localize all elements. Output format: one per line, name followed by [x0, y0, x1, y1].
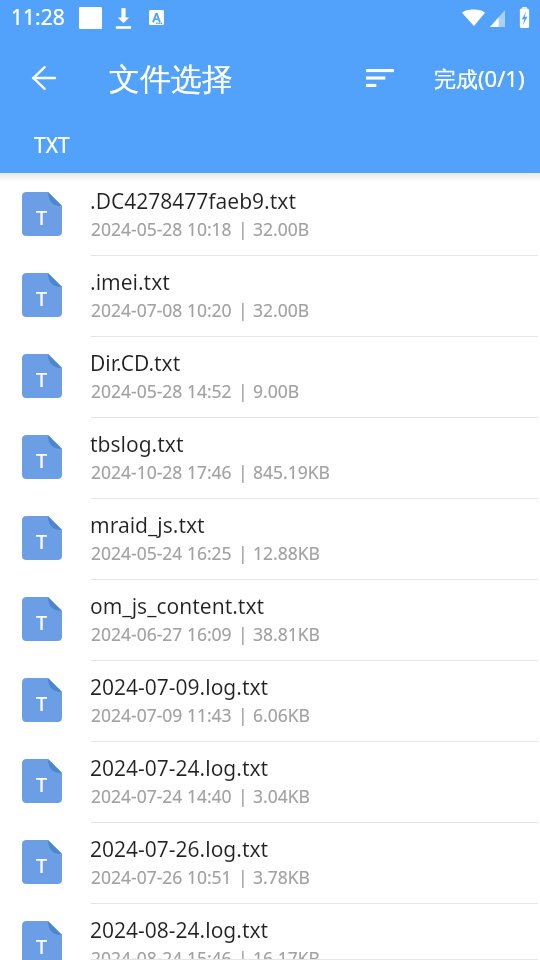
staticText: T: [36, 366, 48, 393]
staticText: 2024-10-28 17:46: [91, 460, 232, 484]
staticText: 2024-07-24.log.txt: [90, 754, 269, 783]
staticText: 3.78KB: [253, 865, 310, 889]
button[interactable]: TXT: [20, 122, 84, 169]
staticText: 38.81KB: [253, 622, 320, 646]
staticText: |: [238, 865, 248, 889]
staticText: 2024-07-26 10:51: [91, 865, 232, 889]
staticText: |: [238, 217, 248, 241]
staticText: T: [36, 609, 48, 636]
button[interactable]: T: [0, 580, 540, 661]
staticText: T: [36, 285, 48, 312]
staticText: 2024-08-24.log.txt: [90, 916, 269, 945]
staticText: |: [238, 460, 248, 484]
staticText: 32.00B: [253, 298, 310, 322]
staticText: |: [238, 622, 248, 646]
staticText: 2024-05-28 10:18: [91, 217, 232, 241]
staticText: 2024-07-09 11:43: [91, 703, 232, 727]
staticText: 2024-06-27 16:09: [91, 622, 232, 646]
staticText: T: [36, 852, 48, 879]
button[interactable]: T: [0, 661, 540, 742]
staticText: T: [36, 204, 48, 231]
staticText: 16.17KB: [253, 946, 320, 960]
staticText: T: [36, 528, 48, 555]
button[interactable]: T: [0, 337, 540, 418]
staticText: 9.00B: [253, 379, 300, 403]
staticText: T: [36, 447, 48, 474]
staticText: 2024-07-24 14:40: [91, 784, 232, 808]
staticText: 845.19KB: [253, 460, 330, 484]
button[interactable]: T: [0, 742, 540, 823]
staticText: om_js_content.txt: [90, 592, 265, 621]
staticText: 32.00B: [253, 217, 310, 241]
button[interactable]: 完成(0/1): [425, 53, 533, 103]
button[interactable]: Back: [22, 57, 64, 99]
staticText: T: [36, 771, 48, 798]
button[interactable]: T: [0, 823, 540, 904]
staticText: T: [36, 690, 48, 717]
staticText: tbslog.txt: [90, 430, 184, 459]
button[interactable]: T: [0, 256, 540, 337]
button[interactable]: T: [0, 499, 540, 580]
staticText: .imei.txt: [90, 268, 170, 297]
staticText: |: [238, 784, 248, 808]
staticText: |: [238, 298, 248, 322]
staticText: 完成(0/1): [434, 63, 525, 93]
staticText: 2024-08-24 15:46: [91, 946, 232, 960]
button[interactable]: T: [0, 418, 540, 499]
staticText: TXT: [34, 131, 70, 160]
staticText: 2024-07-08 10:20: [91, 298, 232, 322]
staticText: 2024-07-26.log.txt: [90, 835, 269, 864]
button[interactable]: T: [0, 175, 540, 256]
staticText: |: [238, 541, 248, 565]
staticText: 12.88KB: [253, 541, 320, 565]
staticText: 2024-05-28 14:52: [91, 379, 232, 403]
button[interactable]: T: [0, 904, 540, 960]
staticText: |: [238, 946, 248, 960]
staticText: |: [238, 703, 248, 727]
staticText: 3.04KB: [253, 784, 310, 808]
staticText: 文件选择: [109, 60, 233, 99]
staticText: Dir.CD.txt: [90, 349, 181, 378]
staticText: .DC4278477faeb9.txt: [90, 187, 296, 216]
staticText: 2024-05-24 16:25: [91, 541, 232, 565]
staticText: |: [238, 379, 248, 403]
staticText: mraid_js.txt: [90, 511, 205, 540]
staticText: 2024-07-09.log.txt: [90, 673, 269, 702]
staticText: T: [36, 933, 48, 960]
staticText: 11:28: [11, 3, 65, 32]
staticText: 6.06KB: [253, 703, 310, 727]
button[interactable]: Sort: [358, 58, 402, 98]
